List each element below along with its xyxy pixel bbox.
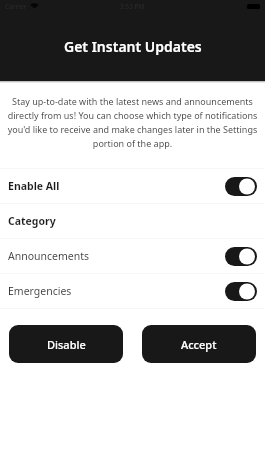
button[interactable]: Toggle notification — [225, 177, 257, 196]
staticText: Stay up-to-date with the latest news and… — [4, 95, 261, 149]
button[interactable]: Disable — [9, 325, 123, 363]
button[interactable]: Emergencies — [0, 274, 265, 308]
button[interactable]: Toggle notification — [225, 282, 257, 301]
staticText: Disable — [47, 337, 86, 352]
button[interactable]: Accept — [142, 325, 256, 363]
staticText: 3:53 PM — [120, 2, 145, 11]
staticText: Accept — [181, 337, 217, 352]
staticText: Announcements — [8, 249, 90, 263]
button[interactable]: Toggle notification — [225, 247, 257, 266]
staticText: Get Instant Updates — [64, 37, 202, 56]
staticText: Emergencies — [8, 284, 72, 298]
button[interactable]: Enable All — [0, 169, 265, 203]
button[interactable]: Announcements — [0, 239, 265, 273]
staticText: Enable All — [8, 179, 60, 193]
staticText: Carrier — [5, 2, 27, 11]
staticText: Category — [8, 214, 56, 228]
other: Wifi signal — [30, 2, 39, 11]
